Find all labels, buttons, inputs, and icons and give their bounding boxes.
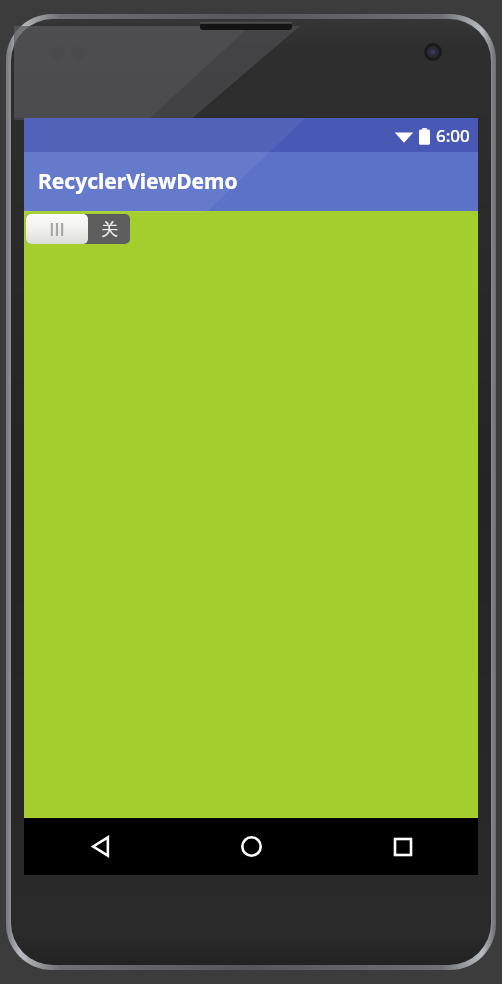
- staticText: 6:00: [436, 124, 470, 147]
- staticText: RecyclerViewDemo: [38, 167, 238, 196]
- staticText: 关: [101, 219, 118, 240]
- button[interactable]: Back: [24, 818, 176, 875]
- button[interactable]: Recent apps: [327, 818, 478, 875]
- button[interactable]: Toggle switch, off: [26, 213, 130, 245]
- button[interactable]: Home: [176, 818, 327, 875]
